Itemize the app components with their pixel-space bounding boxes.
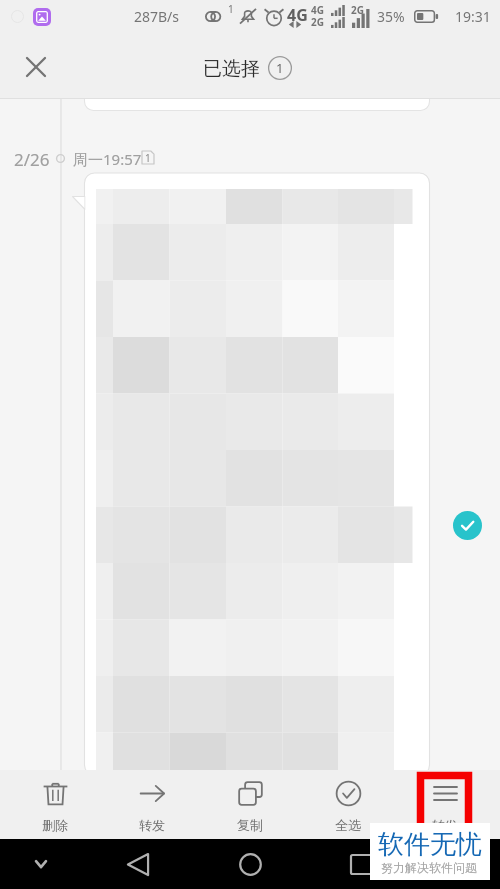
button[interactable]: 转发 (109, 770, 195, 839)
button[interactable]: 删除 (12, 770, 98, 839)
staticText: 1 (145, 151, 151, 165)
button[interactable]: Selected (453, 511, 482, 540)
staticText: 1 (228, 2, 234, 16)
staticText: 软件无忧 (378, 828, 482, 861)
staticText: 努力解决软件问题 (381, 860, 477, 875)
staticText: 35% (377, 7, 405, 26)
staticText: 复制 (237, 817, 263, 833)
staticText: 287B/s (134, 7, 180, 26)
staticText: 4G (311, 3, 324, 17)
staticText: 转发 (139, 817, 165, 833)
staticText: 2G (311, 15, 324, 29)
staticText: 2/26 (14, 148, 50, 171)
staticText: 4G (287, 4, 308, 26)
button[interactable]: 转发 (402, 770, 488, 839)
staticText: 全选 (335, 817, 361, 833)
staticText: 转发 (432, 817, 458, 833)
staticText: 1 (276, 59, 284, 77)
staticText: 删除 (42, 817, 68, 833)
button[interactable]: Close (13, 44, 58, 89)
staticText: 2G (351, 3, 364, 17)
button[interactable]: 复制 (207, 770, 293, 839)
button[interactable]: Recents (340, 842, 384, 886)
button[interactable]: Back (116, 842, 160, 886)
staticText: 已选择 (203, 57, 260, 81)
staticText: 19:31 (455, 7, 491, 26)
staticText: 周一19:57 (73, 149, 142, 169)
button[interactable]: 全选 (305, 770, 391, 839)
button[interactable]: Hide keyboard (19, 842, 63, 886)
button[interactable]: Home (228, 842, 272, 886)
